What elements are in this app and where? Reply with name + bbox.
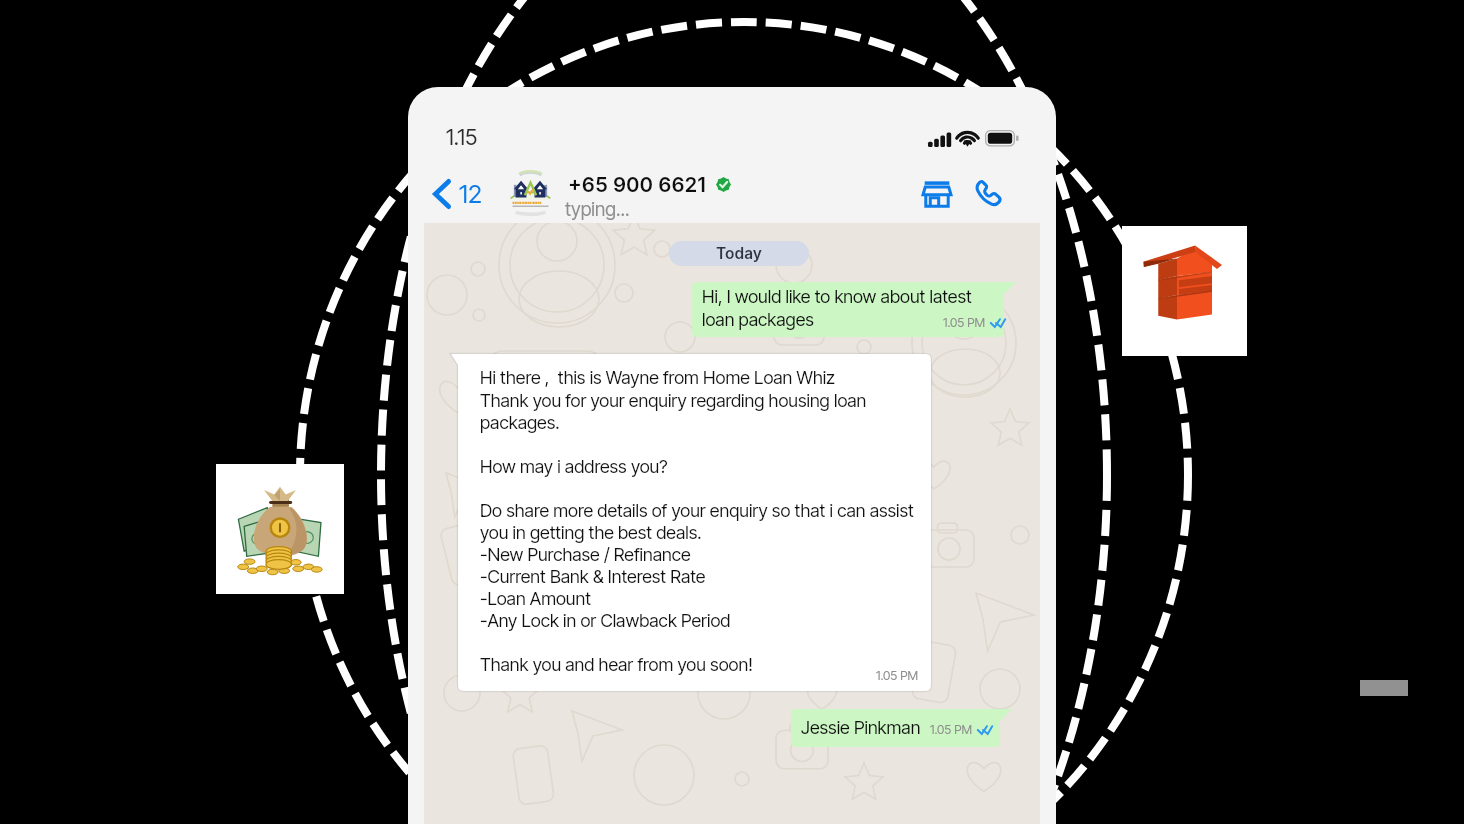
button[interactable]: Business profile [915, 171, 959, 215]
staticText: 1.05 PM [930, 722, 973, 737]
button[interactable]: Today [669, 241, 809, 266]
staticText: 1.05 PM [943, 315, 986, 330]
button[interactable]: Back, 12 unread [427, 172, 488, 216]
staticText: 1.15 [446, 124, 478, 151]
staticText: 1.05 PM [876, 668, 919, 683]
staticText: +65 900 6621 [568, 172, 706, 197]
staticText: 12 [459, 179, 482, 209]
staticText: Hi there , this is Wayne from Home Loan … [480, 367, 930, 675]
staticText: Hi, I would like to know about latest lo… [702, 286, 972, 331]
staticText: typing... [565, 198, 630, 221]
staticText: Jessie Pinkman [801, 717, 921, 739]
button[interactable]: Call [966, 171, 1010, 215]
staticText: Today [716, 244, 762, 263]
